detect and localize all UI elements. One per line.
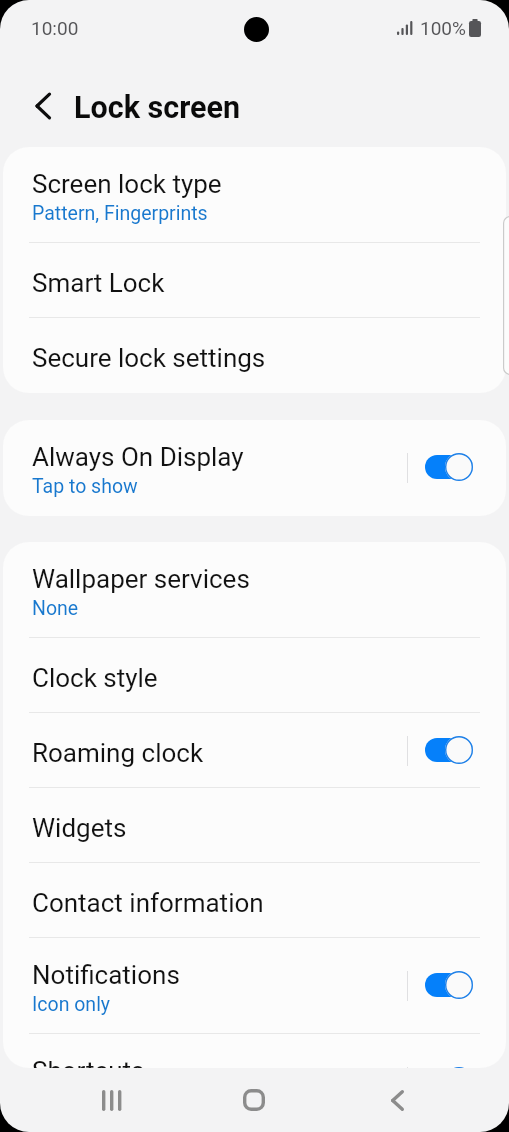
- staticText: Shortcuts: [32, 1056, 145, 1068]
- staticText: Smart Lock: [32, 268, 165, 298]
- staticText: Clock style: [32, 663, 158, 693]
- staticText: Always On Display: [32, 442, 244, 472]
- button[interactable]: Back: [361, 1068, 433, 1132]
- staticText: Pattern, Fingerprints: [32, 202, 208, 225]
- button[interactable]: Contact information: [3, 863, 506, 938]
- staticText: Widgets: [32, 813, 127, 843]
- button[interactable]: Shortcuts: [3, 1034, 506, 1068]
- staticText: Contact information: [32, 888, 264, 918]
- staticText: 100%: [420, 17, 466, 39]
- button[interactable]: Notifications: [3, 938, 506, 1034]
- staticText: Wallpaper services: [32, 564, 250, 594]
- button[interactable]: Toggle Notifications: [425, 971, 473, 999]
- staticText: Screen lock type: [32, 169, 222, 199]
- staticText: 10:00: [31, 17, 79, 39]
- staticText: Secure lock settings: [32, 343, 266, 373]
- button[interactable]: Wallpaper services: [3, 542, 506, 638]
- button[interactable]: Toggle Shortcuts: [425, 1067, 473, 1068]
- button[interactable]: Smart Lock: [3, 243, 506, 318]
- button[interactable]: Clock style: [3, 638, 506, 713]
- staticText: Roaming clock: [32, 738, 204, 768]
- button[interactable]: Recent apps: [76, 1068, 148, 1132]
- button[interactable]: Toggle Roaming clock: [425, 736, 473, 764]
- button[interactable]: Always On Display: [3, 420, 506, 516]
- button[interactable]: Navigate up: [23, 86, 63, 126]
- button[interactable]: Roaming clock: [3, 713, 506, 788]
- button[interactable]: Widgets: [3, 788, 506, 863]
- staticText: Lock screen: [74, 90, 241, 126]
- button[interactable]: Secure lock settings: [3, 318, 506, 393]
- staticText: Tap to show: [32, 475, 138, 498]
- button[interactable]: Home: [218, 1068, 290, 1132]
- staticText: Icon only: [32, 993, 111, 1016]
- staticText: None: [32, 597, 79, 620]
- staticText: Notifications: [32, 960, 180, 990]
- button[interactable]: Screen lock type: [3, 147, 506, 243]
- button[interactable]: Toggle Always On Display: [425, 453, 473, 481]
